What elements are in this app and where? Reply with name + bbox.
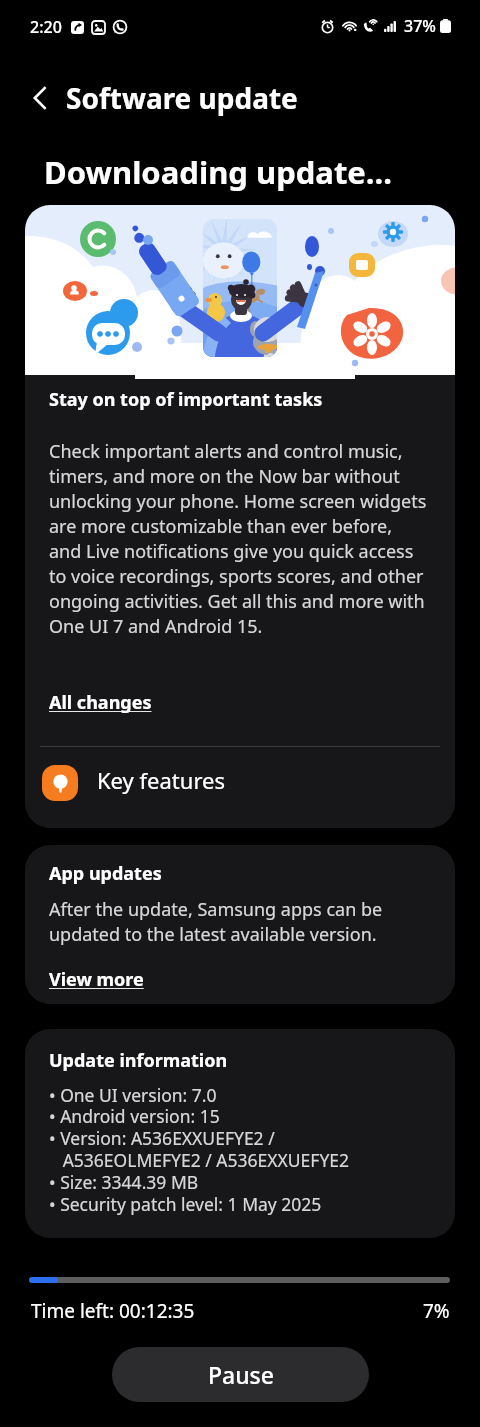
staticText: Key features	[97, 765, 225, 795]
button[interactable]: All changes	[49, 690, 152, 715]
staticText: Downloading update...	[44, 151, 392, 193]
staticText: Update information	[49, 1048, 228, 1073]
staticText: 7%	[423, 1298, 450, 1324]
staticText: 37%	[404, 15, 436, 37]
button[interactable]: Key features	[25, 747, 455, 828]
staticText: Software update	[66, 79, 298, 117]
button[interactable]: View more	[49, 967, 144, 992]
button[interactable]: Back	[0, 69, 66, 127]
staticText: Time left: 00:12:35	[31, 1298, 195, 1324]
staticText: After the update, Samsung apps can be up…	[49, 897, 431, 947]
staticText: View more	[49, 967, 144, 992]
staticText: Pause	[208, 1359, 274, 1390]
staticText: • One UI version: 7.0 • Android version:…	[49, 1083, 350, 1216]
staticText: Stay on top of important tasks	[49, 387, 323, 412]
staticText: 2:20	[30, 16, 62, 38]
staticText: App updates	[49, 861, 162, 886]
staticText: Check important alerts and control music…	[49, 439, 427, 639]
staticText: All changes	[49, 690, 152, 715]
button[interactable]: Pause	[112, 1347, 369, 1402]
